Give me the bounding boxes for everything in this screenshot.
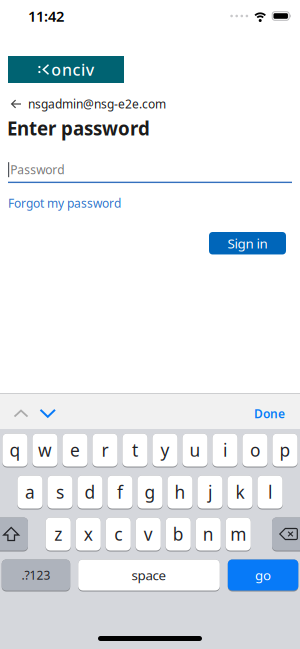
staticText: w bbox=[38, 438, 52, 461]
button[interactable]: e bbox=[62, 433, 88, 467]
button[interactable]: f bbox=[107, 475, 133, 509]
staticText: l bbox=[268, 480, 272, 503]
button[interactable]: x bbox=[76, 517, 101, 551]
staticText: Forgot my password bbox=[8, 195, 121, 211]
button[interactable]: b bbox=[166, 517, 191, 551]
button[interactable]: a bbox=[17, 475, 43, 509]
staticText: y bbox=[160, 438, 169, 461]
staticText: r bbox=[101, 438, 108, 461]
staticText: i bbox=[81, 59, 85, 80]
button[interactable]: g bbox=[137, 475, 163, 509]
staticText: x bbox=[84, 522, 93, 545]
button[interactable]: h bbox=[167, 475, 193, 509]
button[interactable]: n bbox=[196, 517, 221, 551]
staticText: s bbox=[56, 480, 64, 503]
button[interactable]: v bbox=[136, 517, 161, 551]
staticText: u bbox=[189, 438, 200, 461]
button[interactable]: w bbox=[32, 433, 58, 467]
staticText: o bbox=[51, 59, 61, 80]
staticText: Password bbox=[10, 162, 64, 178]
staticText: k bbox=[235, 480, 244, 503]
button[interactable]: Delete bbox=[272, 517, 300, 551]
button[interactable]: go bbox=[228, 559, 298, 591]
button[interactable]: Next field bbox=[28, 409, 55, 418]
staticText: f bbox=[117, 480, 123, 503]
button[interactable]: j bbox=[197, 475, 223, 509]
button[interactable]: Done bbox=[254, 405, 300, 421]
button[interactable]: t bbox=[122, 433, 148, 467]
staticText: Sign in bbox=[227, 234, 267, 252]
staticText: Done bbox=[254, 405, 285, 421]
button[interactable]: q bbox=[2, 433, 28, 467]
staticText: 11:42 bbox=[28, 6, 64, 26]
button[interactable]: space bbox=[78, 559, 220, 591]
staticText: go bbox=[255, 566, 271, 584]
button[interactable]: c bbox=[106, 517, 131, 551]
button[interactable]: i bbox=[212, 433, 238, 467]
button[interactable]: l bbox=[257, 475, 283, 509]
staticText: Enter password bbox=[7, 116, 150, 141]
staticText: nsgadmin@nsg-e2e.com bbox=[28, 96, 166, 112]
button[interactable]: y bbox=[152, 433, 178, 467]
button[interactable]: s bbox=[47, 475, 73, 509]
staticText: a bbox=[25, 480, 35, 503]
button[interactable]: Previous field bbox=[0, 410, 28, 417]
staticText: m bbox=[230, 522, 246, 545]
button[interactable]: o bbox=[242, 433, 268, 467]
staticText: g bbox=[144, 480, 155, 503]
button[interactable]: Shift bbox=[0, 517, 28, 551]
staticText: q bbox=[9, 438, 20, 461]
staticText: n bbox=[203, 522, 214, 545]
staticText: v bbox=[144, 522, 153, 545]
button[interactable]: z bbox=[46, 517, 71, 551]
staticText: t bbox=[132, 438, 138, 461]
button[interactable]: .?123 bbox=[2, 559, 70, 591]
staticText: p bbox=[279, 438, 290, 461]
staticText: i bbox=[223, 438, 227, 461]
button[interactable]: Forgot my password bbox=[0, 195, 300, 211]
staticText: b bbox=[173, 522, 184, 545]
staticText: .?123 bbox=[21, 567, 50, 583]
staticText: n bbox=[62, 59, 72, 80]
staticText: o bbox=[250, 438, 260, 461]
staticText: d bbox=[84, 480, 95, 503]
button[interactable]: p bbox=[272, 433, 298, 467]
staticText: space bbox=[131, 566, 166, 584]
staticText: e bbox=[70, 438, 80, 461]
staticText: h bbox=[174, 480, 185, 503]
button[interactable]: u bbox=[182, 433, 208, 467]
button[interactable]: m bbox=[226, 517, 251, 551]
staticText: c bbox=[72, 59, 80, 80]
button[interactable]: nsgadmin@nsg-e2e.com bbox=[0, 96, 300, 112]
button[interactable]: d bbox=[77, 475, 103, 509]
button[interactable]: r bbox=[92, 433, 118, 467]
button[interactable]: Sign in bbox=[209, 232, 286, 254]
staticText: z bbox=[54, 522, 62, 545]
staticText: c bbox=[114, 522, 122, 545]
staticText: j bbox=[208, 480, 212, 503]
button[interactable]: k bbox=[227, 475, 253, 509]
staticText: v bbox=[86, 59, 94, 80]
